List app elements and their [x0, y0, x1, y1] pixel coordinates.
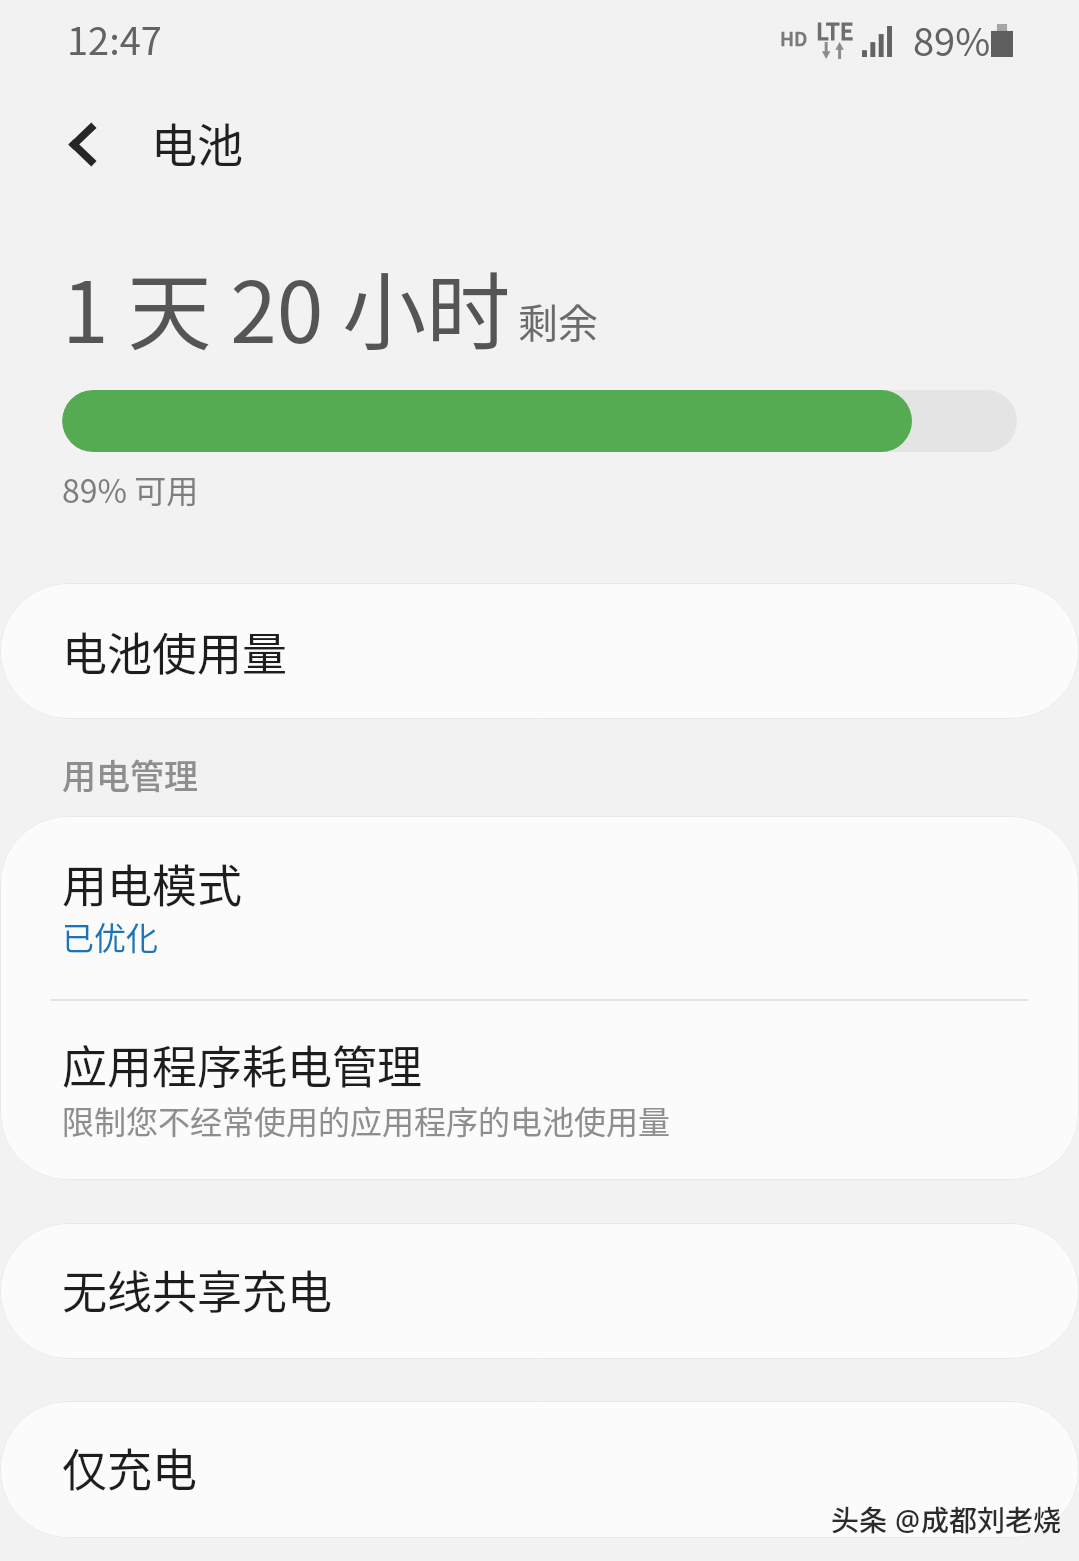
button[interactable]: 电池使用量: [0, 583, 1079, 719]
button[interactable]: Back: [38, 100, 126, 190]
staticText: 89%: [913, 12, 991, 67]
button[interactable]: 仅充电: [0, 1401, 1079, 1538]
staticText: HD: [780, 24, 808, 52]
staticText: 无线共享充电: [62, 1257, 333, 1322]
staticText: 限制您不经常使用的应用程序的电池使用量: [62, 1097, 671, 1143]
staticText: 已优化: [62, 913, 159, 959]
staticText: 成都刘老烧: [921, 1499, 1062, 1540]
staticText: 12:47: [67, 11, 162, 66]
button[interactable]: 无线共享充电: [0, 1223, 1079, 1359]
staticText: 89% 可用: [62, 466, 199, 512]
staticText: 用电模式: [62, 851, 243, 916]
staticText: 剩余: [518, 292, 598, 350]
staticText: 用电管理: [62, 750, 198, 799]
button[interactable]: 用电模式: [0, 816, 1079, 999]
staticText: 仅充电: [62, 1435, 198, 1500]
staticText: 电池使用量: [62, 619, 288, 684]
button[interactable]: 应用程序耗电管理: [0, 1001, 1079, 1180]
staticText: @: [895, 1501, 921, 1539]
staticText: 应用程序耗电管理: [62, 1032, 423, 1097]
staticText: LTE: [816, 13, 854, 46]
staticText: 头条: [831, 1499, 888, 1540]
staticText: 1 天 20 小时: [62, 246, 511, 368]
staticText: 电池: [151, 109, 243, 176]
